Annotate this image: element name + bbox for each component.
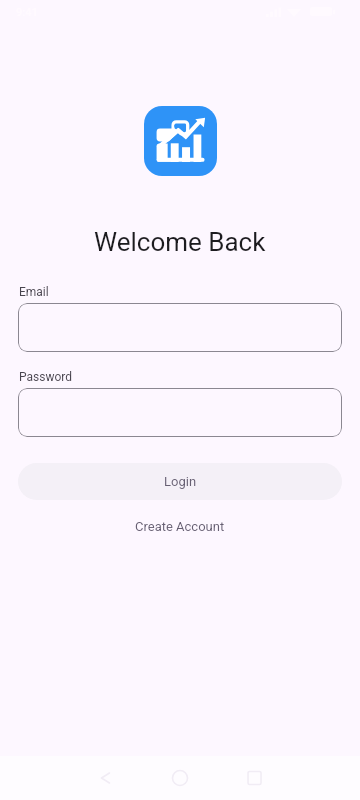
staticText: Welcome Back xyxy=(94,227,266,257)
button[interactable] xyxy=(18,388,342,437)
button[interactable]: Create Account xyxy=(0,516,360,536)
other: App logo xyxy=(144,106,217,176)
staticText: Password xyxy=(19,370,73,384)
staticText: Email xyxy=(19,285,49,299)
button[interactable]: Login xyxy=(18,463,342,500)
staticText: Create Account xyxy=(135,519,225,534)
button[interactable] xyxy=(18,303,342,352)
staticText: Login xyxy=(164,474,197,489)
